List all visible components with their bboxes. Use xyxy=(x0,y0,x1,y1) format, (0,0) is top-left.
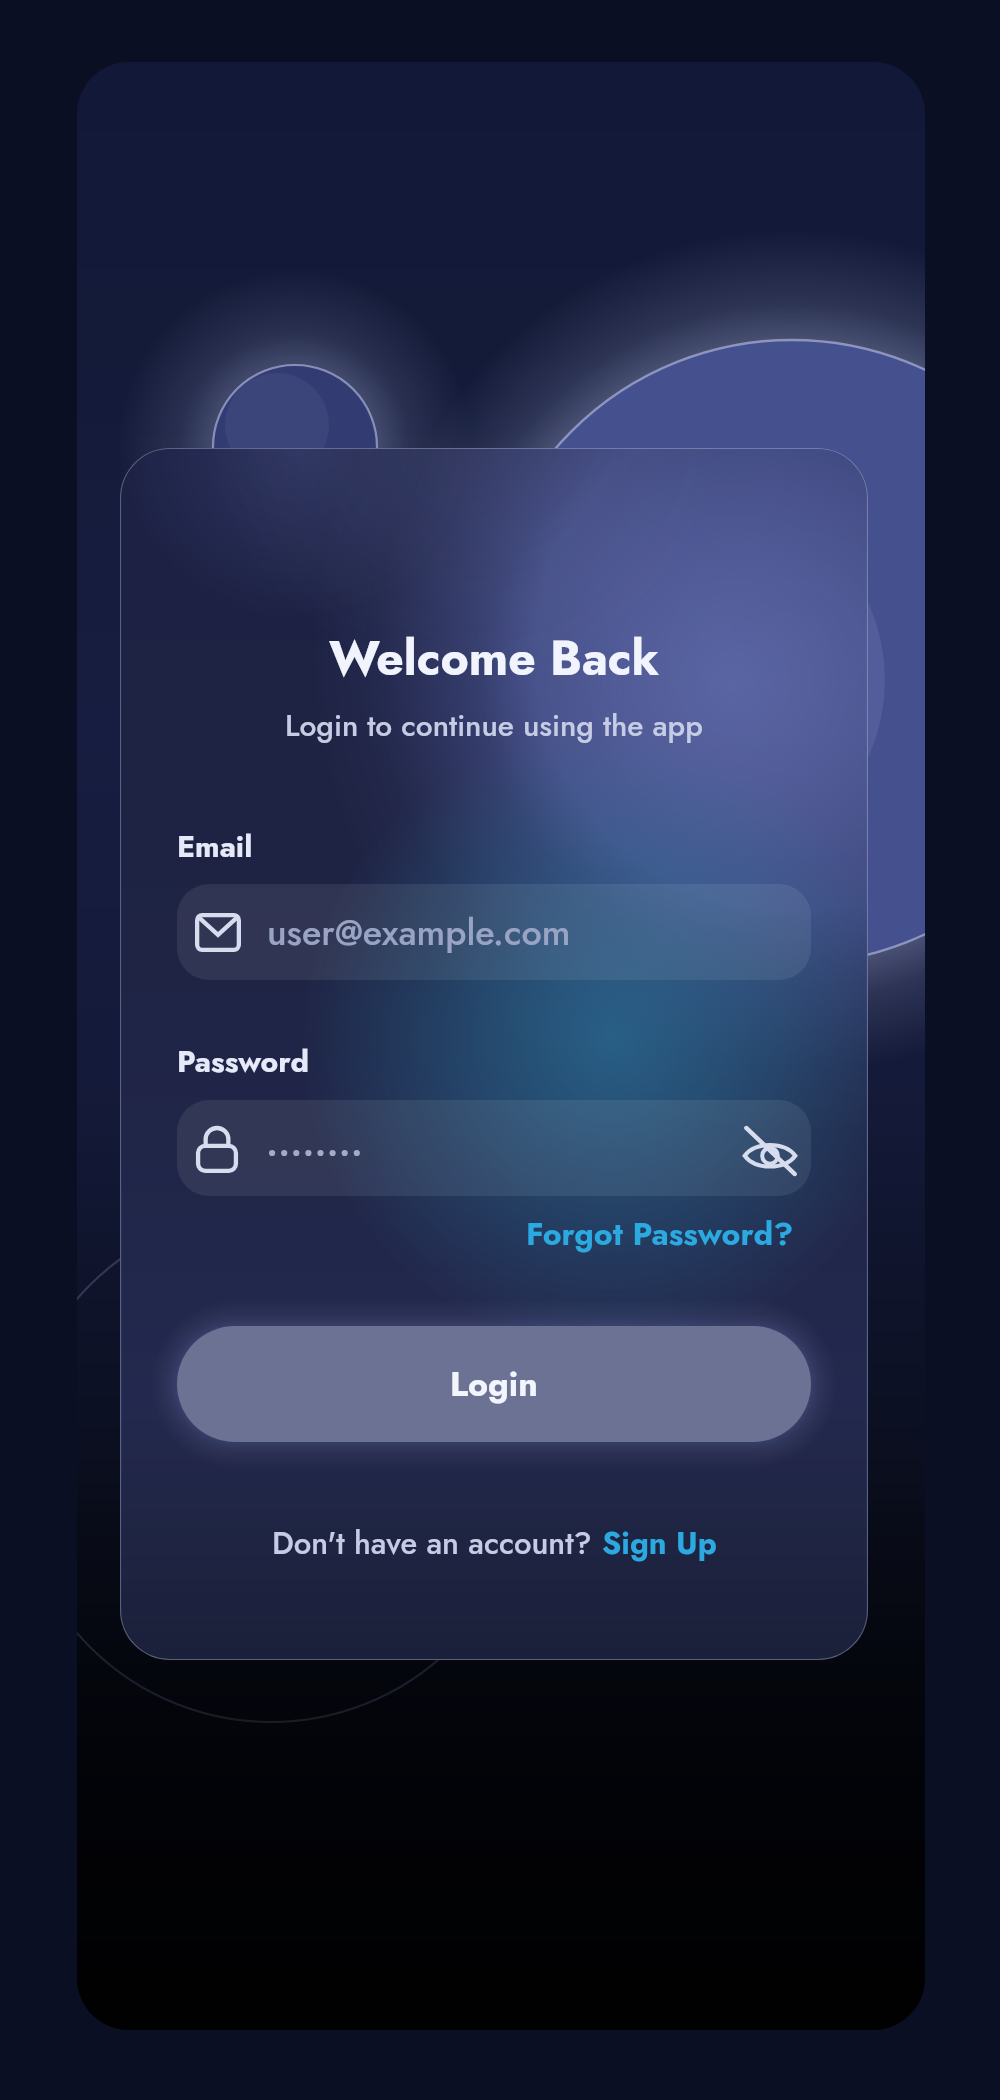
button[interactable]: Sign Up xyxy=(602,1521,717,1566)
staticText: Sign Up xyxy=(602,1521,717,1566)
staticText: Email xyxy=(177,825,253,868)
button[interactable]: Show password xyxy=(177,1100,811,1196)
button[interactable]: Forgot Password? xyxy=(524,1207,796,1261)
button[interactable]: Login xyxy=(177,1326,811,1442)
staticText: Don't have an account? xyxy=(272,1521,602,1566)
staticText: Welcome Back xyxy=(329,624,660,693)
staticText: user@example.com xyxy=(267,906,571,958)
button[interactable]: Show password xyxy=(738,1119,802,1183)
button[interactable]: user@example.com xyxy=(177,884,811,980)
staticText: Login to continue using the app xyxy=(285,704,703,747)
staticText: Login xyxy=(450,1360,538,1409)
staticText: Forgot Password? xyxy=(526,1211,794,1257)
staticText: Password xyxy=(177,1040,310,1083)
